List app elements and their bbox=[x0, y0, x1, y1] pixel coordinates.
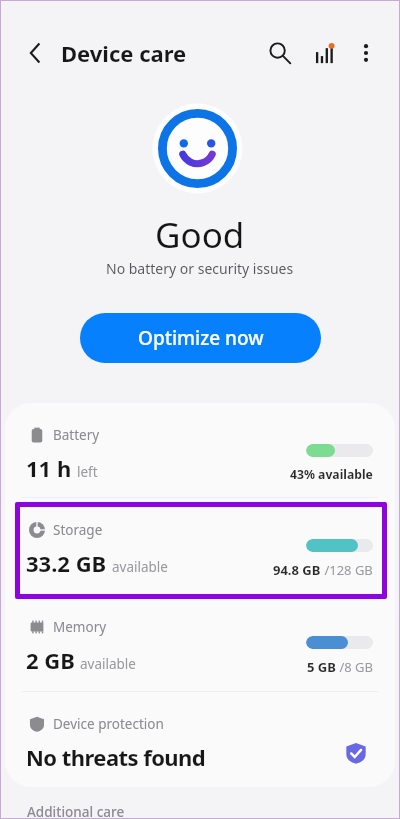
staticText: Optimize now bbox=[138, 325, 264, 351]
staticText: Additional care bbox=[27, 803, 125, 819]
staticText: available bbox=[80, 655, 136, 673]
staticText: /128 GB bbox=[321, 561, 373, 579]
staticText: 33.2 GB bbox=[26, 548, 107, 578]
staticText: 11 h bbox=[26, 453, 72, 483]
staticText: left bbox=[77, 463, 98, 481]
staticText: Good bbox=[155, 211, 245, 259]
staticText: Device protection bbox=[53, 715, 164, 733]
button[interactable]: Search bbox=[260, 33, 300, 73]
staticText: Storage bbox=[53, 521, 103, 539]
staticText: No threats found bbox=[26, 742, 206, 772]
staticText: No battery or security issues bbox=[106, 259, 294, 278]
staticText: 2 GB bbox=[26, 645, 75, 675]
staticText: /8 GB bbox=[336, 658, 373, 676]
button[interactable]: Usage statistics bbox=[304, 33, 344, 73]
staticText: 94.8 GB bbox=[273, 561, 321, 579]
button[interactable]: Storage bbox=[5, 498, 395, 593]
staticText: 5 GB bbox=[307, 658, 336, 676]
staticText: Device care bbox=[61, 38, 187, 68]
staticText: 43% available bbox=[290, 466, 373, 483]
button[interactable]: Device protection bbox=[5, 692, 395, 787]
staticText: Memory bbox=[53, 618, 107, 636]
staticText: available bbox=[112, 558, 168, 576]
button[interactable]: Memory bbox=[5, 595, 395, 690]
staticText: Battery bbox=[53, 426, 100, 444]
button[interactable]: Battery bbox=[5, 403, 395, 498]
button[interactable]: More options bbox=[346, 33, 386, 73]
button[interactable]: Back bbox=[18, 36, 52, 70]
button[interactable]: Optimize now bbox=[80, 313, 321, 363]
